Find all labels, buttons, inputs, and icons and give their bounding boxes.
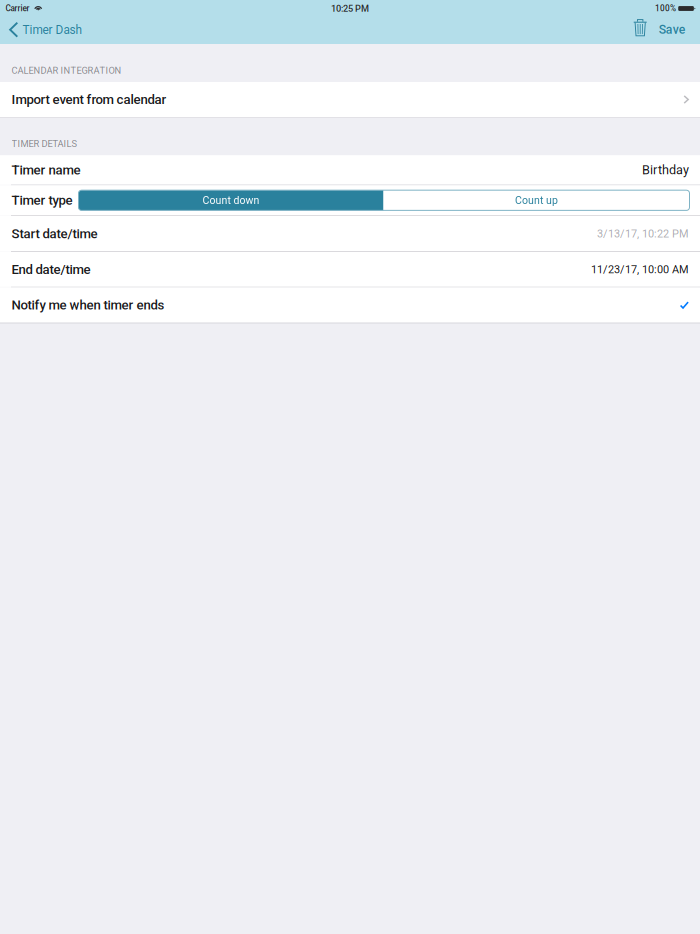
button[interactable]: Count down xyxy=(78,190,383,210)
staticText: CALENDAR INTEGRATION xyxy=(11,65,121,76)
staticText: Timer type xyxy=(11,193,72,208)
staticText: Notify me when timer ends xyxy=(11,297,164,313)
staticText: Import event from calendar xyxy=(11,92,166,107)
staticText: Carrier xyxy=(6,4,30,13)
staticText: Birthday xyxy=(642,162,689,177)
staticText: Count down xyxy=(202,194,259,206)
staticText: Start date/time xyxy=(11,226,97,241)
staticText: 10:25 PM xyxy=(331,3,369,14)
staticText: 100% xyxy=(655,4,676,13)
staticText: 3/13/17, 10:22 PM xyxy=(597,227,689,240)
staticText: TIMER DETAILS xyxy=(11,138,77,149)
button[interactable]: Save xyxy=(659,18,700,43)
staticText: Timer name xyxy=(11,162,80,178)
button[interactable]: Count up xyxy=(383,190,689,210)
button[interactable]: Delete timer xyxy=(629,19,651,41)
staticText: End date/time xyxy=(11,262,90,277)
button[interactable]: Timer Dash xyxy=(0,18,83,43)
staticText: Timer Dash xyxy=(23,23,83,37)
staticText: 11/23/17, 10:00 AM xyxy=(591,263,689,276)
staticText: Save xyxy=(659,22,686,37)
button[interactable]: Notify me when timer ends xyxy=(0,287,700,323)
staticText: Count up xyxy=(515,194,558,206)
button[interactable]: Import event from calendar xyxy=(0,82,700,117)
